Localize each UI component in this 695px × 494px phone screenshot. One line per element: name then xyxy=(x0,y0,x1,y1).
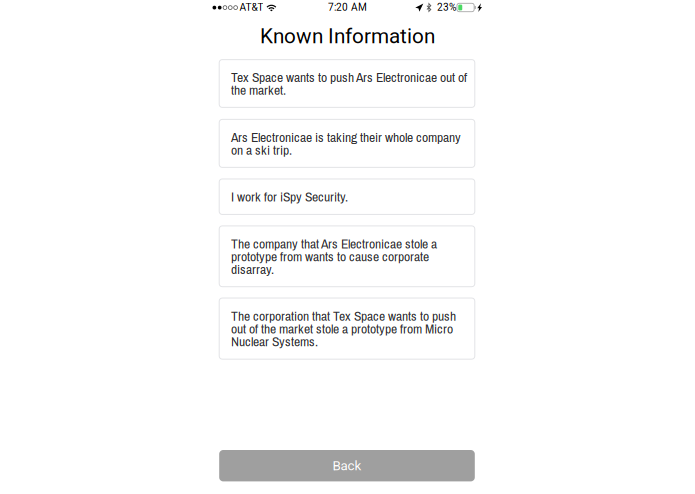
staticText: Known Information xyxy=(260,24,435,48)
staticText: Back xyxy=(332,458,361,473)
staticText: AT&T xyxy=(239,1,263,13)
staticText: I work for iSpy Security. xyxy=(231,190,348,203)
button[interactable]: The company that Ars Electronicae stole … xyxy=(219,226,475,287)
button[interactable]: Tex Space wants to push Ars Electronicae… xyxy=(219,60,475,107)
staticText: The company that Ars Electronicae stole … xyxy=(231,237,437,276)
button[interactable]: The corporation that Tex Space wants to … xyxy=(219,298,475,359)
staticText: The corporation that Tex Space wants to … xyxy=(231,309,456,348)
staticText: 7:20 AM xyxy=(328,1,367,13)
button[interactable]: I work for iSpy Security. xyxy=(219,179,475,214)
button[interactable]: Back xyxy=(219,450,475,481)
button[interactable]: Ars Electronicae is taking their whole c… xyxy=(219,119,475,167)
staticText: 23% xyxy=(437,1,456,13)
staticText: Tex Space wants to push Ars Electronicae… xyxy=(231,71,467,96)
staticText: Ars Electronicae is taking their whole c… xyxy=(231,131,461,156)
